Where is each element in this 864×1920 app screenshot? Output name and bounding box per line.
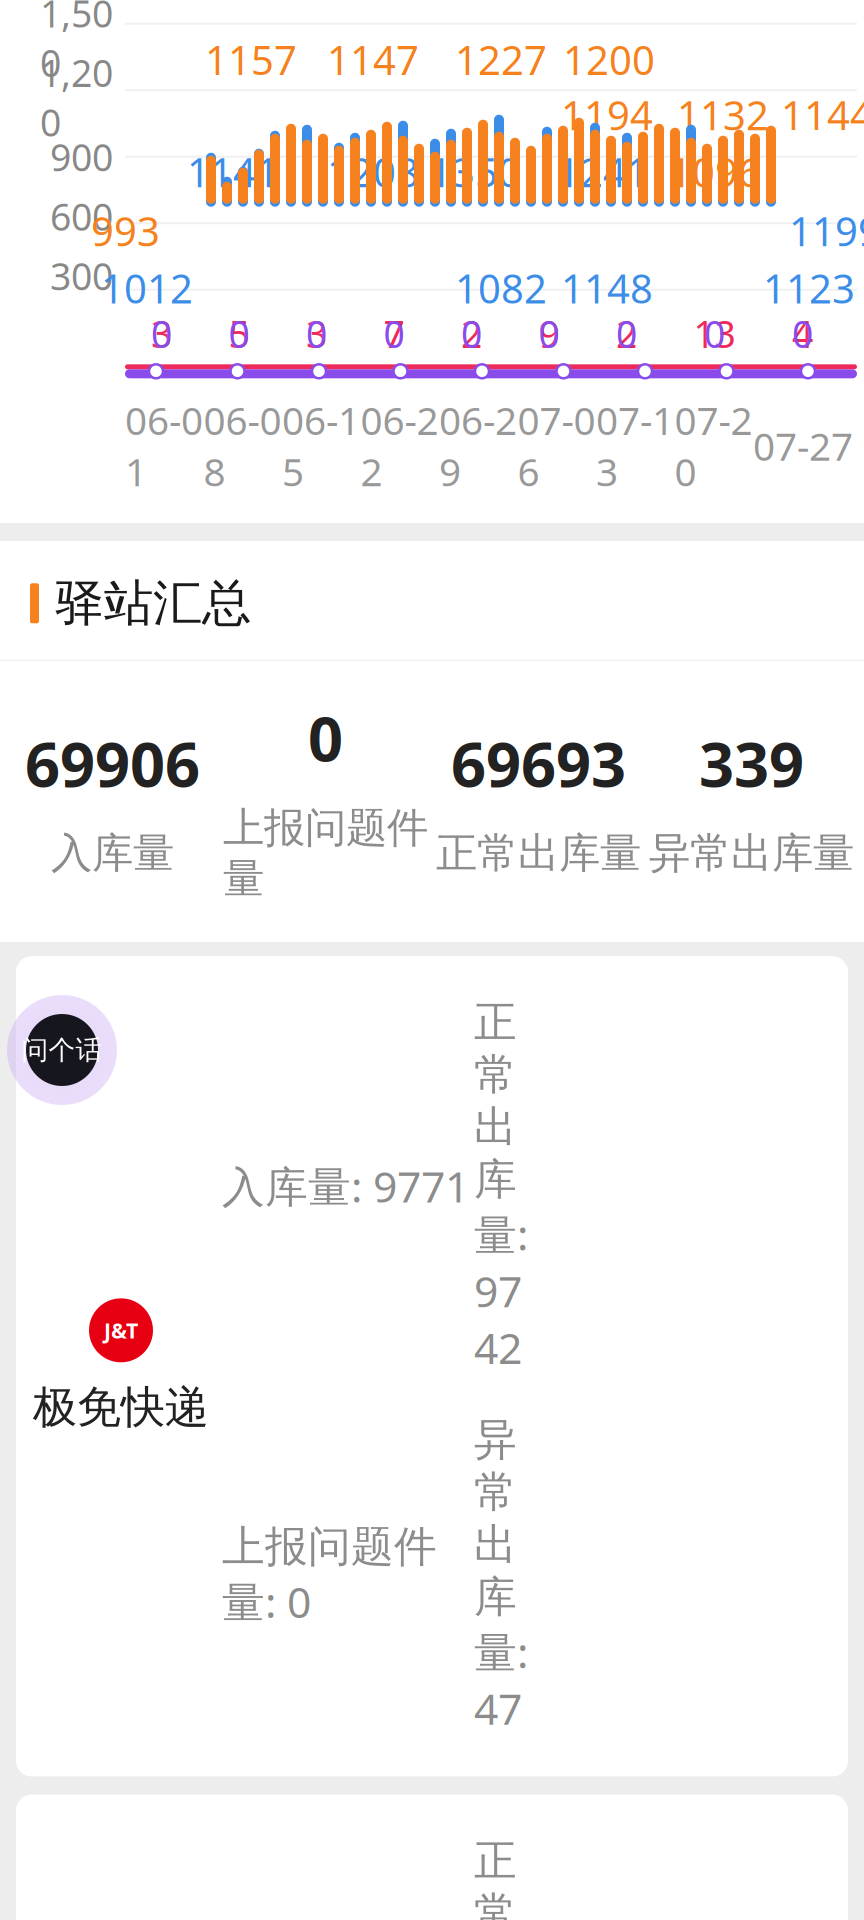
staticText: 300 [50, 251, 113, 300]
staticText: 2 [616, 309, 637, 358]
staticText: 0 [306, 309, 327, 358]
staticText: 1200 [563, 33, 655, 86]
button[interactable]: 问个话 AI 助手 [0, 988, 124, 1112]
staticText: 07-20 [674, 394, 752, 497]
staticText: 0 [228, 309, 249, 358]
staticText: 1144 [781, 88, 864, 141]
staticText: 69906 [25, 722, 200, 804]
staticText: 1148 [561, 261, 653, 314]
staticText: 1082 [455, 261, 547, 314]
staticText: 06-08 [203, 394, 281, 497]
staticText: 0 [151, 309, 172, 358]
staticText: 993 [91, 204, 160, 257]
staticText: 5 [228, 309, 249, 358]
staticText: 1241 [557, 145, 649, 198]
staticText: 13 [693, 309, 735, 358]
staticText: 07-13 [596, 394, 674, 497]
staticText: 入库量 [51, 828, 174, 879]
staticText: 06-15 [282, 394, 360, 497]
staticText: 1227 [455, 33, 547, 86]
staticText: 正常出库量: 4 [474, 1835, 528, 1920]
staticText: 7 [383, 309, 404, 358]
staticText: 0 [308, 697, 343, 778]
staticText: 3 [306, 309, 327, 358]
staticText: 异常出库量 [649, 828, 854, 879]
staticText: 驿站汇总 [55, 573, 251, 634]
staticText: 异常出库量: 47 [474, 1414, 528, 1737]
staticText: 2 [461, 309, 482, 358]
staticText: 07-06 [517, 394, 595, 497]
staticText: 06-01 [125, 394, 203, 497]
staticText: 600 [50, 191, 113, 241]
staticText: 极免快递 [33, 1380, 209, 1434]
staticText: J&T [104, 1316, 138, 1344]
staticText: 06-29 [439, 394, 517, 497]
staticText: 1,200 [40, 48, 113, 147]
button[interactable]: 安能 [16, 1795, 848, 1920]
staticText: 正常出库量: 9742 [474, 996, 528, 1376]
staticText: 4 [792, 309, 813, 358]
staticText: 07-27 [753, 420, 853, 471]
staticText: 1123 [763, 261, 855, 314]
staticText: 1147 [327, 33, 419, 86]
staticText: 正常出库量 [436, 828, 641, 879]
staticText: 3 [151, 309, 172, 358]
staticText: 1157 [205, 33, 297, 86]
button[interactable]: J&T [16, 956, 848, 1777]
staticText: 问个话 [21, 1034, 102, 1066]
staticText: 9 [538, 309, 559, 358]
staticText: 0 [616, 309, 637, 358]
staticText: 06-22 [360, 394, 438, 497]
staticText: 1350 [429, 145, 521, 198]
staticText: 入库量: 9771 [222, 1158, 469, 1214]
staticText: 69693 [451, 722, 626, 804]
staticText: 1141 [187, 145, 279, 198]
staticText: 0 [704, 309, 725, 358]
staticText: 1208 [327, 145, 419, 198]
staticText: 900 [50, 132, 113, 181]
staticText: 1096 [669, 145, 761, 198]
staticText: 1,500 [40, 0, 113, 87]
staticText: 0 [792, 309, 813, 358]
staticText: 1194 [561, 88, 653, 141]
staticText: 0 [383, 309, 404, 358]
staticText: 上报问题件量: 0 [222, 1521, 437, 1630]
staticText: 上报问题件量 [223, 802, 428, 904]
staticText: 0 [461, 309, 482, 358]
staticText: 1012 [101, 261, 193, 314]
staticText: 1132 [677, 88, 769, 141]
staticText: 339 [699, 722, 804, 804]
staticText: 1199 [789, 204, 864, 257]
staticText: 0 [538, 309, 559, 358]
